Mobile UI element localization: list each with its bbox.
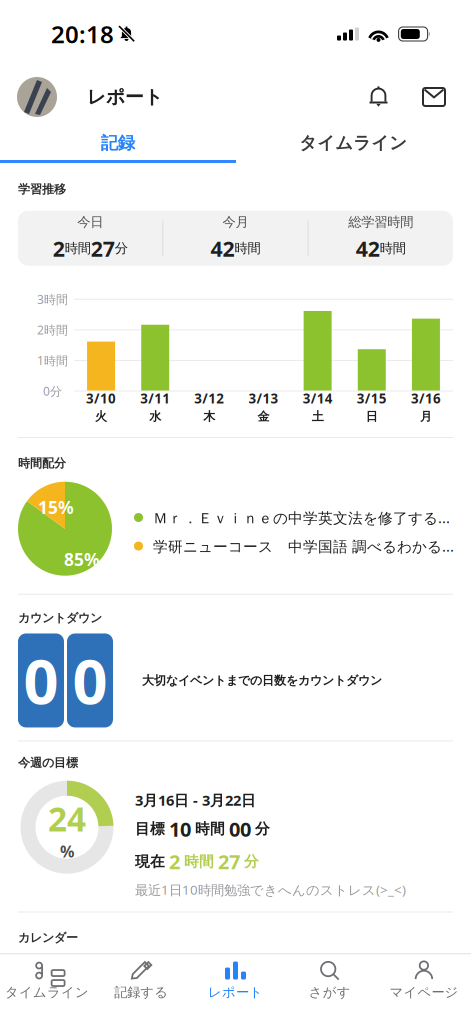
- staticText: 今週の目標: [18, 755, 78, 770]
- button[interactable]: 記録する: [94, 954, 188, 1006]
- staticText: 時間: [380, 240, 406, 257]
- staticText: 0: [72, 640, 107, 721]
- staticText: 2: [169, 848, 180, 875]
- staticText: カレンダー: [18, 930, 78, 945]
- staticText: 記録: [101, 132, 135, 154]
- staticText: 3/10: [86, 389, 116, 407]
- staticText: 月: [420, 409, 432, 424]
- staticText: レポート: [208, 984, 263, 1000]
- staticText: 27: [218, 848, 240, 875]
- button[interactable]: Messages: [412, 76, 456, 118]
- staticText: 最近1日10時間勉強できへんのストレス(>_<): [135, 881, 406, 898]
- staticText: 目標: [135, 820, 165, 838]
- staticText: 3時間: [37, 291, 68, 307]
- staticText: 3/14: [303, 389, 333, 407]
- staticText: Ｍｒ．Ｅｖｉｎｅの中学英文法を修了するドリル５…: [153, 508, 463, 527]
- staticText: 時間配分: [18, 456, 66, 471]
- staticText: 3/15: [357, 389, 387, 407]
- staticText: さがす: [309, 984, 351, 1000]
- staticText: 時間: [65, 240, 91, 257]
- staticText: 今月: [222, 214, 248, 230]
- staticText: 3/12: [194, 389, 224, 407]
- staticText: タイムライン: [299, 132, 407, 154]
- staticText: 2: [53, 234, 65, 263]
- staticText: 分: [244, 852, 259, 870]
- staticText: 今日: [77, 214, 103, 230]
- staticText: カウントダウン: [18, 611, 102, 625]
- staticText: 0: [23, 640, 58, 721]
- staticText: 3月16日 - 3月22日: [135, 790, 256, 810]
- staticText: 土: [312, 409, 324, 424]
- staticText: 火: [95, 409, 107, 424]
- staticText: 時間: [234, 240, 260, 257]
- staticText: 金: [257, 409, 269, 424]
- staticText: 木: [203, 409, 215, 424]
- staticText: 42: [356, 234, 380, 263]
- staticText: 総学習時間: [348, 214, 413, 230]
- staticText: 大切なイベントまでの日数をカウントダウン: [142, 673, 382, 688]
- button[interactable]: レポート: [188, 954, 283, 1006]
- staticText: 24: [48, 796, 86, 841]
- staticText: 日: [366, 409, 378, 424]
- button[interactable]: タイムライン: [0, 954, 94, 1006]
- staticText: %: [60, 841, 74, 862]
- staticText: 15%: [38, 496, 74, 519]
- staticText: 分: [255, 820, 270, 838]
- staticText: 時間: [184, 852, 214, 870]
- staticText: 85%: [64, 548, 100, 571]
- button[interactable]: さがす: [283, 954, 377, 1006]
- staticText: 10: [169, 816, 191, 842]
- button[interactable]: 記録: [0, 126, 235, 160]
- staticText: タイムライン: [5, 984, 89, 1000]
- button[interactable]: タイムライン: [235, 126, 471, 160]
- staticText: 0分: [43, 383, 62, 399]
- staticText: マイページ: [389, 984, 458, 1000]
- staticText: レポート: [87, 85, 163, 108]
- staticText: 00: [229, 816, 251, 842]
- staticText: 1時間: [37, 352, 68, 368]
- staticText: 学習推移: [18, 182, 66, 197]
- staticText: 分: [115, 240, 128, 257]
- staticText: 記録する: [114, 984, 168, 1000]
- staticText: 3/16: [411, 389, 441, 407]
- staticText: 27: [91, 234, 115, 263]
- staticText: 現在: [135, 852, 165, 870]
- staticText: 2時間: [37, 322, 68, 338]
- button[interactable]: Profile: [0, 77, 87, 117]
- staticText: 時間: [195, 820, 225, 838]
- staticText: 水: [149, 409, 161, 424]
- staticText: 3/11: [140, 389, 170, 407]
- staticText: 42: [210, 234, 234, 263]
- staticText: 3/13: [248, 389, 278, 407]
- staticText: 学研ニューコース 中学国語 調べるわかる力がつく…: [153, 536, 463, 556]
- staticText: 20:18: [51, 18, 114, 50]
- button[interactable]: Notifications: [357, 76, 400, 117]
- button[interactable]: マイページ: [377, 954, 471, 1006]
